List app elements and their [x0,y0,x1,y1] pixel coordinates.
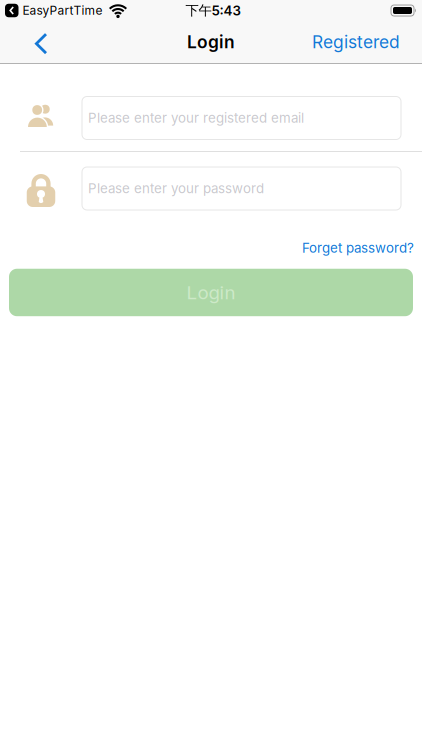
button[interactable]: Back to EasyPartTime [5,3,102,18]
button[interactable]: Back [0,30,47,54]
staticText: EasyPartTime [22,3,102,18]
staticText: Login [187,32,235,52]
button[interactable]: Login [9,269,413,316]
button[interactable]: Forget password? [302,240,414,256]
staticText: Forget password? [302,240,414,256]
staticText: Please enter your registered email [88,110,304,126]
staticText: Registered [312,32,400,52]
button[interactable]: Registered [312,32,422,52]
staticText: 下午5:43 [185,2,240,19]
staticText: Please enter your password [88,181,264,196]
staticText: Login [186,281,235,303]
